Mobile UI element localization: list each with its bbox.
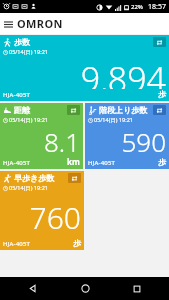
staticText: HJA-405T xyxy=(3,91,31,99)
staticText: 9,894 xyxy=(80,56,166,89)
staticText: 歩数 xyxy=(14,37,30,47)
staticText: 760 xyxy=(29,197,81,238)
staticText: 18:57 xyxy=(148,2,166,12)
button[interactable]: Open navigation menu xyxy=(0,16,16,32)
staticText: 05/14(日) 19:21 xyxy=(9,116,48,124)
staticText: 22% xyxy=(131,3,143,11)
staticText: km xyxy=(67,156,80,167)
staticText: 590 xyxy=(121,124,166,157)
staticText: 歩 xyxy=(158,89,166,99)
button[interactable]: 階段上り歩数 xyxy=(85,103,169,169)
staticText: OMRON xyxy=(17,16,63,31)
button[interactable]: Sync 階段上り歩数 xyxy=(153,105,166,115)
staticText: HJA-405T xyxy=(88,159,116,167)
button[interactable]: Home xyxy=(65,277,105,300)
button[interactable]: Sync 距離 xyxy=(67,105,80,115)
staticText: 早歩き歩数 xyxy=(14,173,55,183)
staticText: HJA-405T xyxy=(3,159,31,167)
staticText: 05/14(日) 19:21 xyxy=(9,48,48,56)
staticText: 距離 xyxy=(14,105,30,115)
staticText: 歩 xyxy=(73,238,81,248)
staticText: 歩 xyxy=(158,157,166,167)
staticText: 8.1 xyxy=(43,124,80,156)
staticText: HJA-405T xyxy=(3,240,31,248)
button[interactable]: 歩数 xyxy=(0,35,169,101)
button[interactable]: 距離 xyxy=(0,103,83,169)
staticText: 階段上り歩数 xyxy=(99,105,148,115)
button[interactable]: Recent apps xyxy=(117,277,157,300)
staticText: 05/14(日) 19:21 xyxy=(94,116,133,124)
button[interactable]: Sync 早歩き歩数 xyxy=(68,173,81,183)
button[interactable]: 早歩き歩数 xyxy=(0,171,84,250)
staticText: 05/14(日) 19:21 xyxy=(9,184,48,192)
button[interactable]: Sync 歩数 xyxy=(153,37,166,47)
button[interactable]: Back xyxy=(12,277,52,300)
